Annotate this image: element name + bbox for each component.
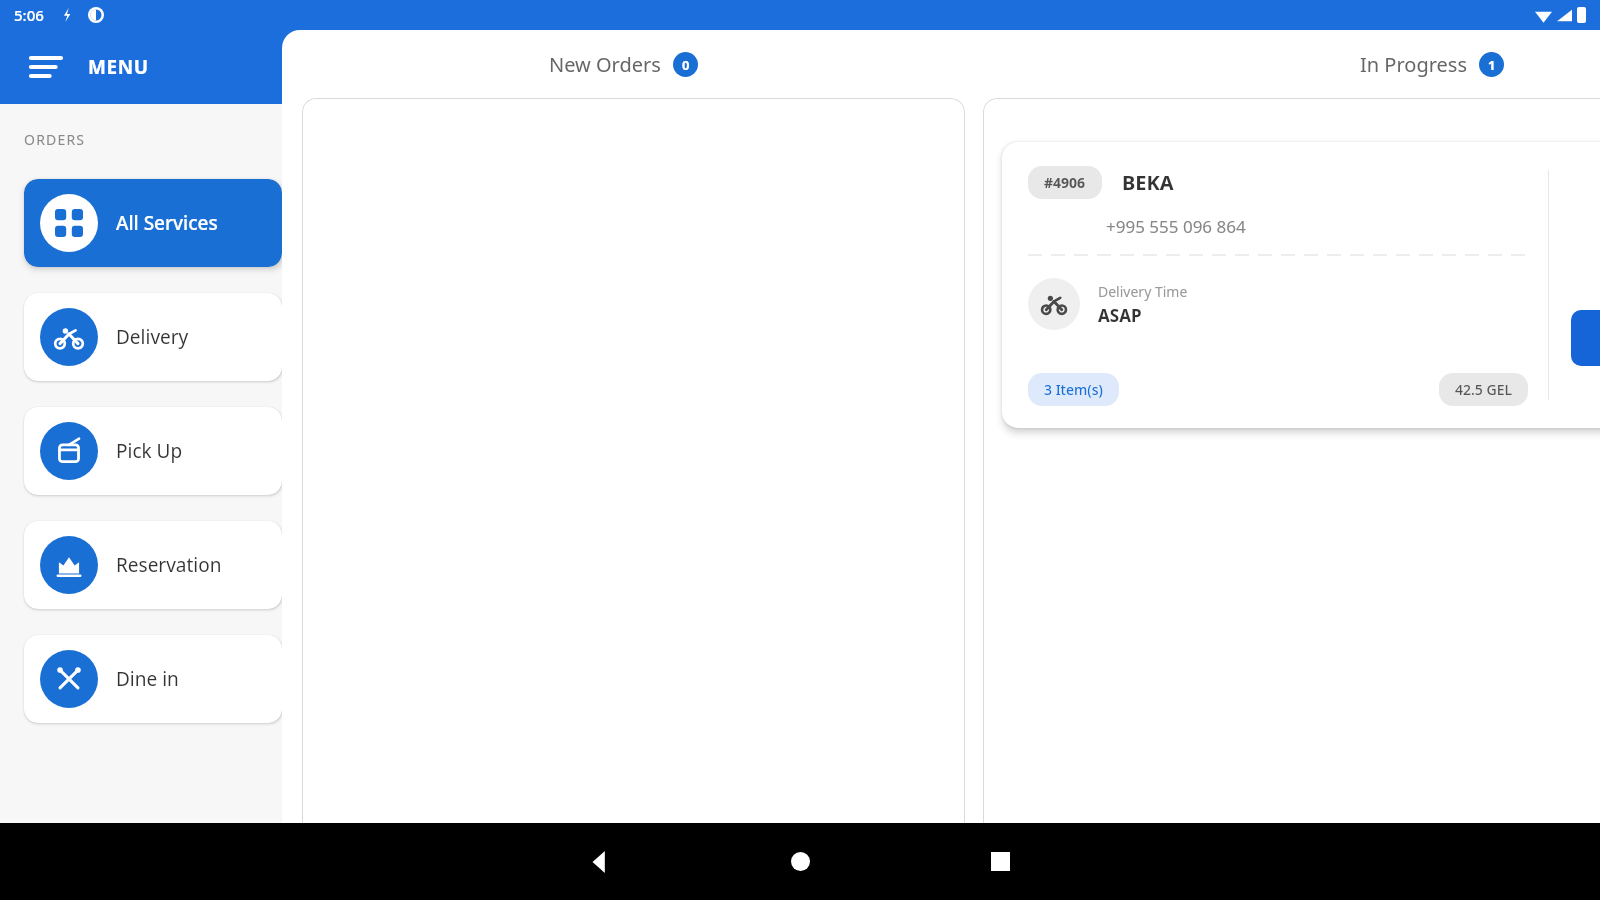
- button[interactable]: Recent apps: [900, 823, 1100, 900]
- button[interactable]: Delivery: [24, 293, 282, 381]
- staticText: Reservation: [116, 552, 222, 578]
- button[interactable]: Home: [700, 823, 900, 900]
- button[interactable]: In Progress: [1360, 51, 1504, 78]
- staticText: 42.5 GEL: [1455, 380, 1512, 399]
- button[interactable]: New Orders: [549, 51, 698, 78]
- button[interactable]: Back: [500, 823, 700, 900]
- staticText: ASAP: [1098, 304, 1142, 327]
- button[interactable]: #4906: [1002, 142, 1600, 428]
- staticText: 0: [682, 56, 690, 74]
- staticText: 1: [1488, 56, 1496, 74]
- staticText: 5:06: [14, 5, 44, 25]
- staticText: In Progress: [1360, 51, 1467, 78]
- staticText: Dine in: [116, 666, 179, 692]
- button[interactable]: Open navigation menu: [22, 43, 70, 91]
- button[interactable]: READY: [1571, 310, 1600, 366]
- button[interactable]: Dine in: [24, 635, 282, 723]
- staticText: 3 Item(s): [1044, 380, 1103, 399]
- staticText: New Orders: [549, 51, 661, 78]
- staticText: All Services: [116, 210, 218, 236]
- staticText: MENU: [88, 54, 149, 80]
- staticText: ORDERS: [24, 130, 86, 149]
- staticText: BEKA: [1122, 169, 1174, 196]
- staticText: Pick Up: [116, 438, 183, 464]
- staticText: #4906: [1044, 173, 1086, 192]
- staticText: Delivery Time: [1098, 282, 1188, 301]
- staticText: +995 555 096 864: [1106, 215, 1246, 238]
- button[interactable]: All Services: [24, 179, 282, 267]
- staticText: Delivery: [116, 324, 189, 350]
- button[interactable]: Reservation: [24, 521, 282, 609]
- button[interactable]: Pick Up: [24, 407, 282, 495]
